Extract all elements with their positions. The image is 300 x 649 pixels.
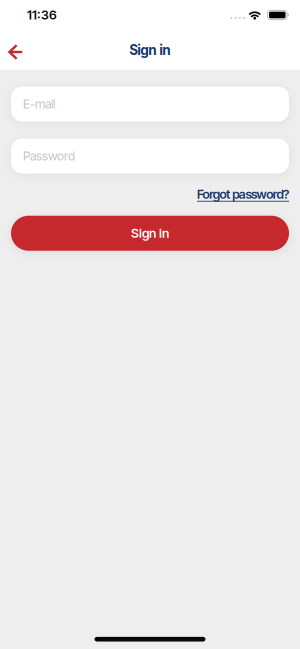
- staticText: E-mail: [23, 96, 55, 111]
- button[interactable]: Forgot password?: [197, 186, 289, 202]
- button[interactable]: Sign in: [11, 216, 289, 251]
- button[interactable]: Back: [0, 38, 23, 62]
- staticText: Forgot password?: [197, 186, 289, 202]
- staticText: Sign in: [131, 226, 169, 241]
- staticText: Password: [23, 148, 75, 163]
- staticText: 11:36: [27, 7, 57, 23]
- staticText: Sign in: [129, 42, 170, 58]
